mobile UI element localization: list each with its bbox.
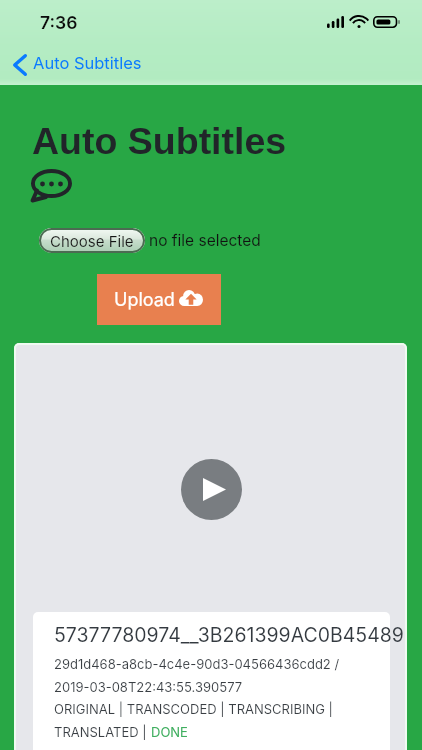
staticText: no file selected xyxy=(149,231,261,250)
staticText: 2019-03-08T22:43:55.390577 xyxy=(54,679,243,695)
button[interactable] xyxy=(33,612,390,750)
staticText: ORIGINAL | TRANSCODED | TRANSCRIBING | xyxy=(54,701,333,717)
button[interactable]: Upload xyxy=(97,274,221,325)
button[interactable]: Play video xyxy=(181,459,242,520)
staticText: 57377780974__3B261399AC0B454895 xyxy=(54,623,407,647)
button[interactable]: Choose File xyxy=(39,228,145,253)
staticText: 29d1d468-a8cb-4c4e-90d3-04566436cdd2 / xyxy=(54,656,340,672)
staticText: Auto Subtitles xyxy=(32,120,287,162)
staticText: 7:36 xyxy=(40,12,78,33)
staticText: Auto Subtitles xyxy=(33,53,142,73)
staticText: DONE xyxy=(151,724,188,740)
staticText: TRANSLATED | xyxy=(54,724,151,740)
button[interactable]: Back to Auto Subtitles xyxy=(0,46,150,84)
staticText: Choose File xyxy=(50,232,134,250)
staticText: Upload xyxy=(114,289,175,311)
